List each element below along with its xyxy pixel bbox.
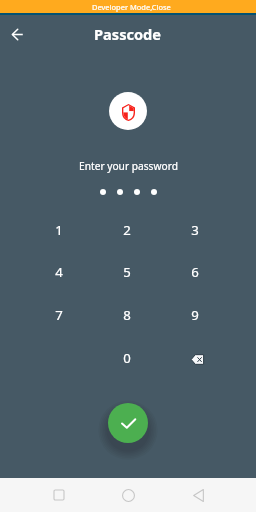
- button[interactable]: 4: [24, 251, 93, 293]
- button[interactable]: Recents: [44, 480, 74, 510]
- button[interactable]: [161, 337, 229, 379]
- staticText: Passcode: [94, 24, 162, 44]
- staticText: 5: [123, 263, 131, 281]
- staticText: 9: [191, 306, 199, 324]
- button[interactable]: 6: [161, 251, 229, 293]
- staticText: 2: [123, 221, 131, 239]
- staticText: 6: [191, 263, 199, 281]
- button[interactable]: 8: [93, 294, 161, 336]
- staticText: 1: [55, 221, 63, 239]
- button[interactable]: 1: [24, 209, 93, 251]
- button[interactable]: 2: [93, 209, 161, 251]
- staticText: 4: [55, 263, 63, 281]
- staticText: Enter your password: [79, 159, 178, 173]
- button[interactable]: Back: [183, 480, 213, 510]
- button[interactable]: Home: [113, 480, 143, 510]
- staticText: 7: [55, 306, 63, 324]
- staticText: Developer Mode,Close: [92, 2, 171, 12]
- button[interactable]: 9: [161, 294, 229, 336]
- button[interactable]: Confirm: [108, 403, 148, 443]
- button[interactable]: Back: [2, 20, 30, 48]
- staticText: 0: [123, 349, 131, 367]
- button[interactable]: 3: [161, 209, 229, 251]
- button[interactable]: 5: [93, 251, 161, 293]
- staticText: 3: [191, 221, 199, 239]
- button[interactable]: 7: [24, 294, 93, 336]
- staticText: 8: [123, 306, 131, 324]
- button[interactable]: 0: [93, 337, 161, 379]
